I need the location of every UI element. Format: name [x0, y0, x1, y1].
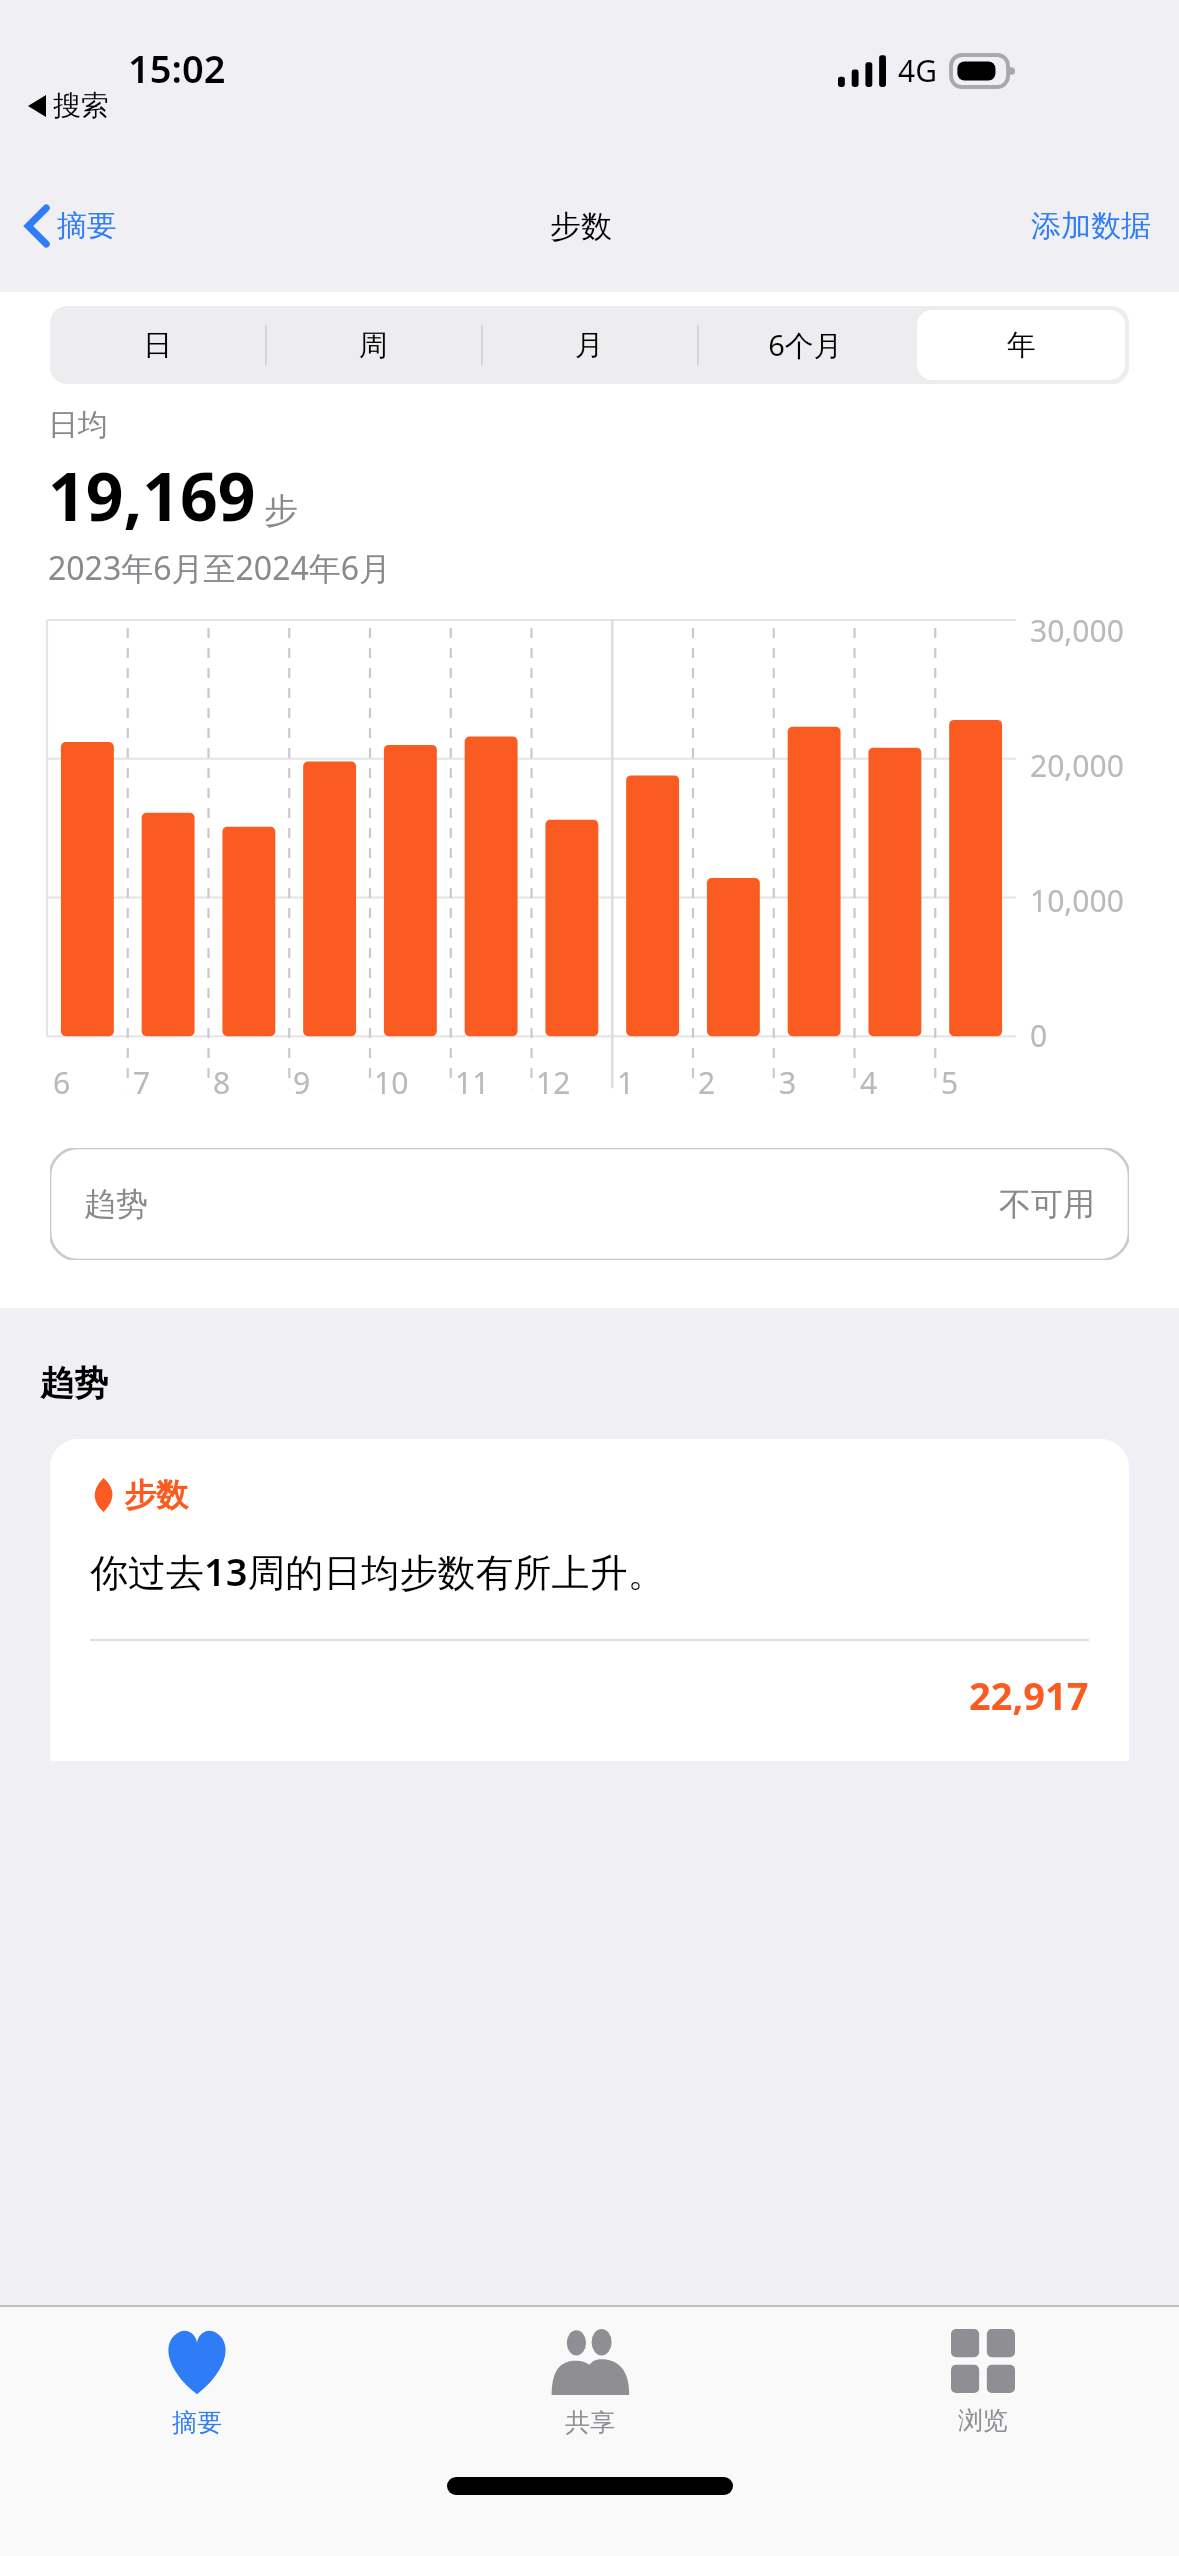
staticText: 4G: [898, 50, 937, 91]
staticText: 日: [143, 327, 172, 364]
button[interactable]: 步数: [50, 1439, 1129, 1761]
staticText: 19,169: [48, 450, 256, 540]
button[interactable]: 趋势: [50, 1148, 1129, 1260]
staticText: 6: [53, 1062, 71, 1103]
button[interactable]: 日: [50, 306, 265, 384]
staticText: 0: [1030, 1015, 1048, 1056]
staticText: 摘要: [57, 207, 117, 245]
staticText: 步数: [550, 207, 612, 246]
staticText: 搜索: [53, 88, 109, 123]
staticText: 不可用: [999, 1184, 1095, 1224]
staticText: 添加数据: [1031, 207, 1151, 245]
staticText: 周: [359, 327, 388, 364]
staticText: 12: [536, 1062, 571, 1103]
staticText: 1: [617, 1062, 635, 1103]
staticText: 你过去13周的日均步数有所上升。: [90, 1545, 666, 1597]
button[interactable]: 浏览: [786, 2307, 1179, 2457]
button[interactable]: 摘要: [0, 207, 131, 245]
button[interactable]: 6个月: [697, 306, 913, 384]
staticText: 15:02: [128, 42, 226, 94]
staticText: 摘要: [172, 2407, 222, 2438]
staticText: 日均: [48, 406, 108, 444]
button[interactable]: 周: [265, 306, 481, 384]
staticText: 30,000: [1030, 610, 1124, 651]
staticText: 10,000: [1030, 880, 1124, 921]
button[interactable]: 添加数据: [1031, 207, 1179, 245]
staticText: 步: [264, 489, 298, 532]
staticText: 月: [575, 327, 604, 364]
staticText: 2: [698, 1062, 716, 1103]
button[interactable]: 摘要: [0, 2307, 393, 2457]
staticText: 7: [133, 1062, 151, 1103]
staticText: 步数: [124, 1475, 188, 1515]
staticText: 8: [213, 1062, 231, 1103]
button[interactable]: 共享: [393, 2307, 786, 2457]
button[interactable]: 年: [913, 306, 1129, 384]
button[interactable]: 月: [481, 306, 697, 384]
staticText: 共享: [565, 2407, 615, 2438]
staticText: 11: [455, 1062, 490, 1103]
staticText: 浏览: [958, 2405, 1008, 2436]
staticText: 20,000: [1030, 745, 1124, 786]
staticText: 3: [779, 1062, 797, 1103]
staticText: 22,917: [969, 1669, 1089, 1721]
staticText: 5: [941, 1062, 959, 1103]
staticText: 9: [293, 1062, 311, 1103]
staticText: 趋势: [84, 1184, 148, 1224]
staticText: 趋势: [40, 1362, 108, 1405]
staticText: 4: [860, 1062, 878, 1103]
staticText: 6个月: [768, 325, 843, 365]
staticText: 年: [1007, 327, 1036, 364]
staticText: 2023年6月至2024年6月: [48, 546, 392, 590]
staticText: 10: [374, 1062, 409, 1103]
